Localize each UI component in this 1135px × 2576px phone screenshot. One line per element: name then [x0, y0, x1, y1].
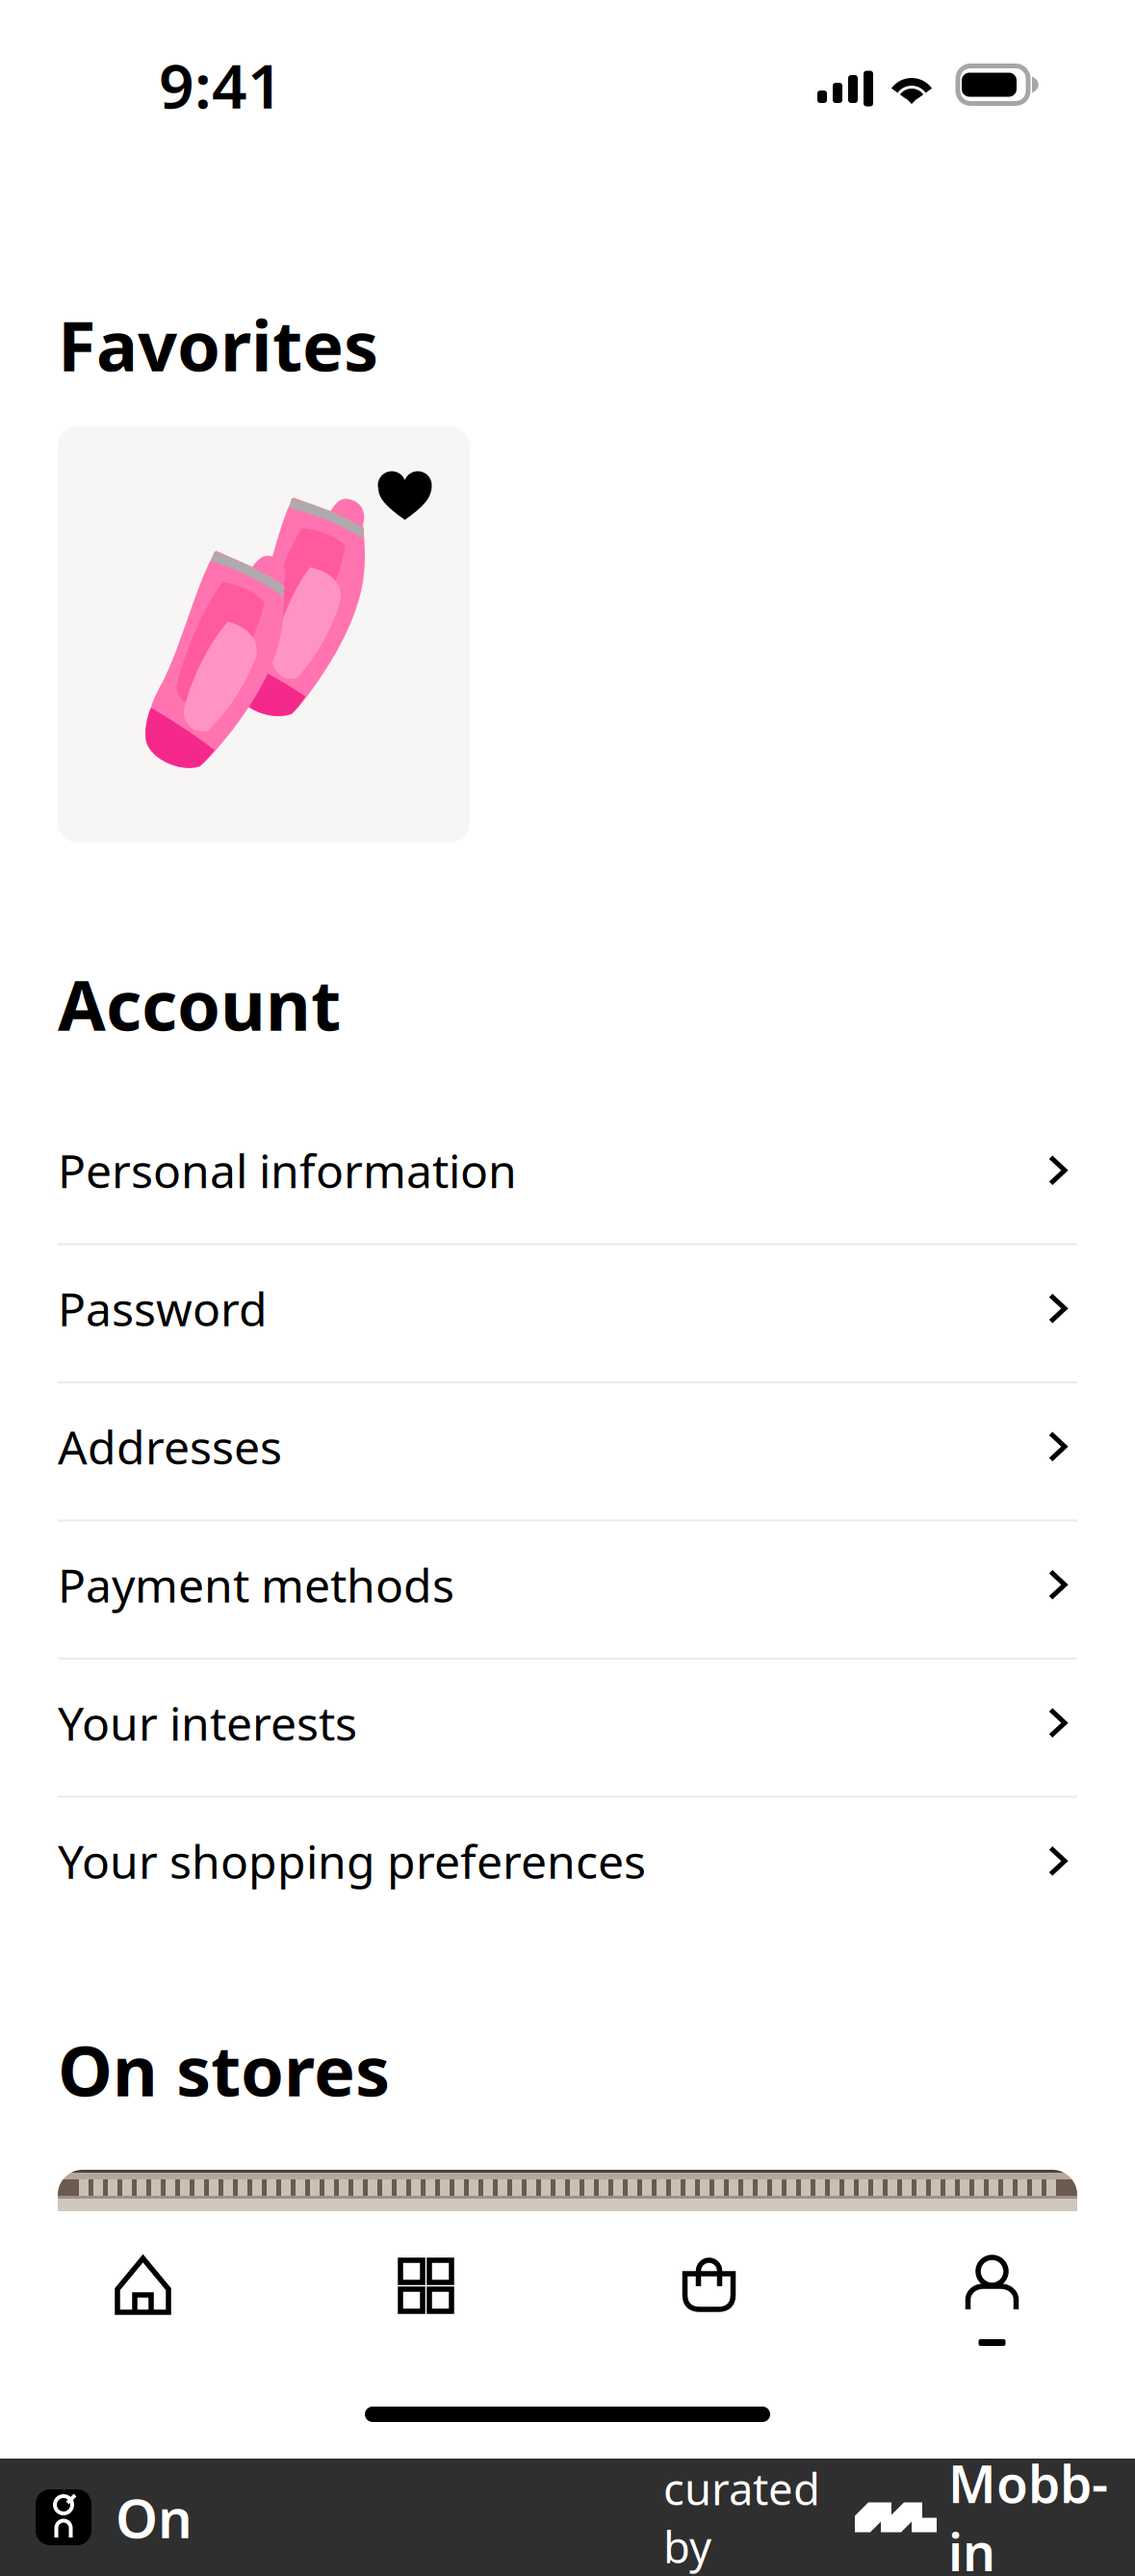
- button[interactable]: Bag: [567, 2211, 851, 2363]
- staticText: 9:41: [159, 44, 283, 126]
- staticText: Your interests: [58, 1692, 357, 1754]
- button[interactable]: Your shopping preferences: [0, 1798, 1135, 1936]
- staticText: curated by: [663, 2459, 820, 2575]
- staticText: Mobbin: [948, 2449, 1108, 2576]
- button[interactable]: Home: [1, 2211, 284, 2363]
- staticText: Payment methods: [58, 1554, 454, 1615]
- button[interactable]: Personal information: [0, 1107, 1135, 1245]
- staticText: Personal information: [58, 1140, 517, 1201]
- staticText: Your shopping preferences: [58, 1830, 646, 1892]
- staticText: Favorites: [58, 298, 378, 390]
- button[interactable]: Explore: [284, 2211, 567, 2363]
- button[interactable]: Your interests: [0, 1660, 1135, 1798]
- button[interactable]: On stores: [58, 2170, 1077, 2272]
- staticText: On stores: [58, 2023, 390, 2115]
- button[interactable]: Addresses: [0, 1383, 1135, 1521]
- button[interactable]: Password: [0, 1245, 1135, 1383]
- staticText: Addresses: [58, 1416, 282, 1477]
- button[interactable]: Payment methods: [0, 1521, 1135, 1660]
- button[interactable]: Account, selected: [851, 2211, 1134, 2363]
- button[interactable]: Performance Low Sock, favourited: [58, 426, 470, 842]
- staticText: Password: [58, 1278, 268, 1339]
- staticText: On: [116, 2481, 193, 2553]
- staticText: Account: [58, 958, 341, 1050]
